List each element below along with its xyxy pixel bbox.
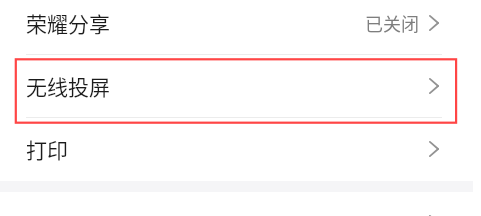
- button[interactable]: 打印: [0, 118, 481, 181]
- other: 无线投屏: [429, 78, 439, 94]
- staticText: 打印: [26, 134, 68, 164]
- button[interactable]: 荣耀分享: [0, 0, 481, 55]
- button[interactable]: 无线投屏: [0, 55, 481, 118]
- other: 打印: [429, 141, 439, 157]
- staticText: 已关闭: [365, 10, 419, 36]
- staticText: 荣耀分享: [26, 8, 110, 38]
- staticText: 无线投屏: [26, 71, 110, 101]
- other: 荣耀分享: [429, 15, 439, 31]
- other: 默认应用: [429, 215, 439, 216]
